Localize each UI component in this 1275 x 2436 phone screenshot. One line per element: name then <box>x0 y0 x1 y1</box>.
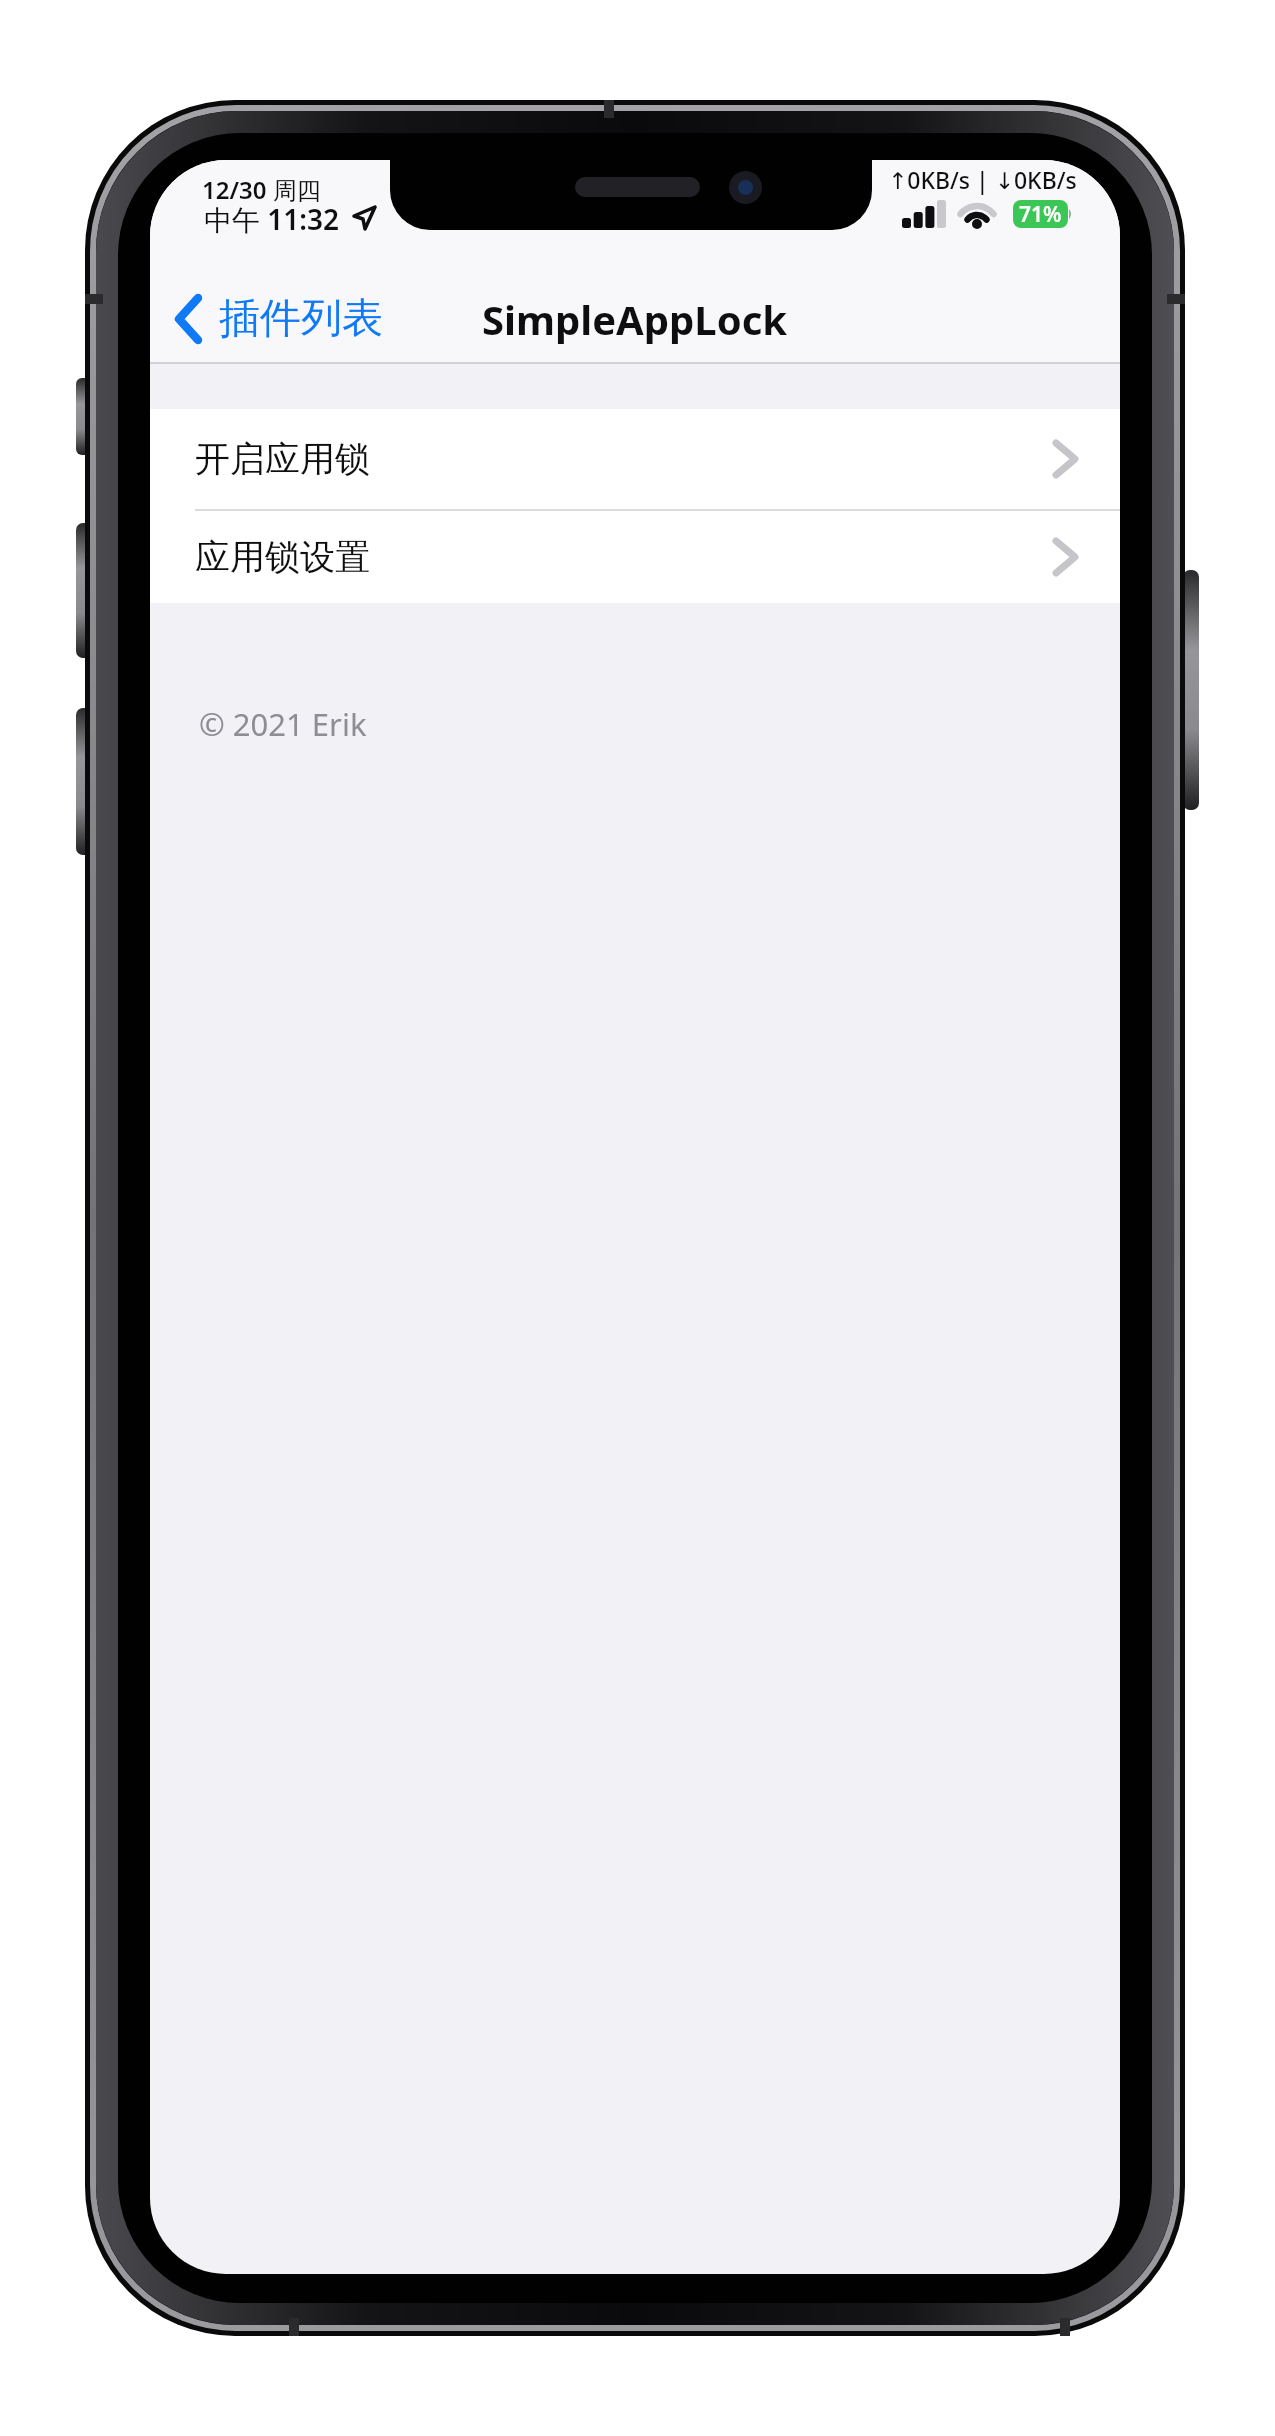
staticText: SimpleAppLock <box>482 292 788 346</box>
staticText: 71% <box>1019 200 1062 228</box>
staticText: 应用锁设置 <box>195 535 370 579</box>
staticText: © 2021 Erik <box>199 703 367 745</box>
button[interactable]: 应用锁设置 <box>150 511 1120 603</box>
staticText: ↑0KB/s | ↓0KB/s <box>888 164 1077 195</box>
staticText: 12/30 周四 <box>202 173 321 203</box>
staticText: 中午 11:32 <box>204 200 340 236</box>
staticText: 开启应用锁 <box>195 437 370 481</box>
staticText: 插件列表 <box>219 293 383 345</box>
button[interactable]: 插件列表 <box>174 292 383 346</box>
button[interactable]: 开启应用锁 <box>150 409 1120 509</box>
